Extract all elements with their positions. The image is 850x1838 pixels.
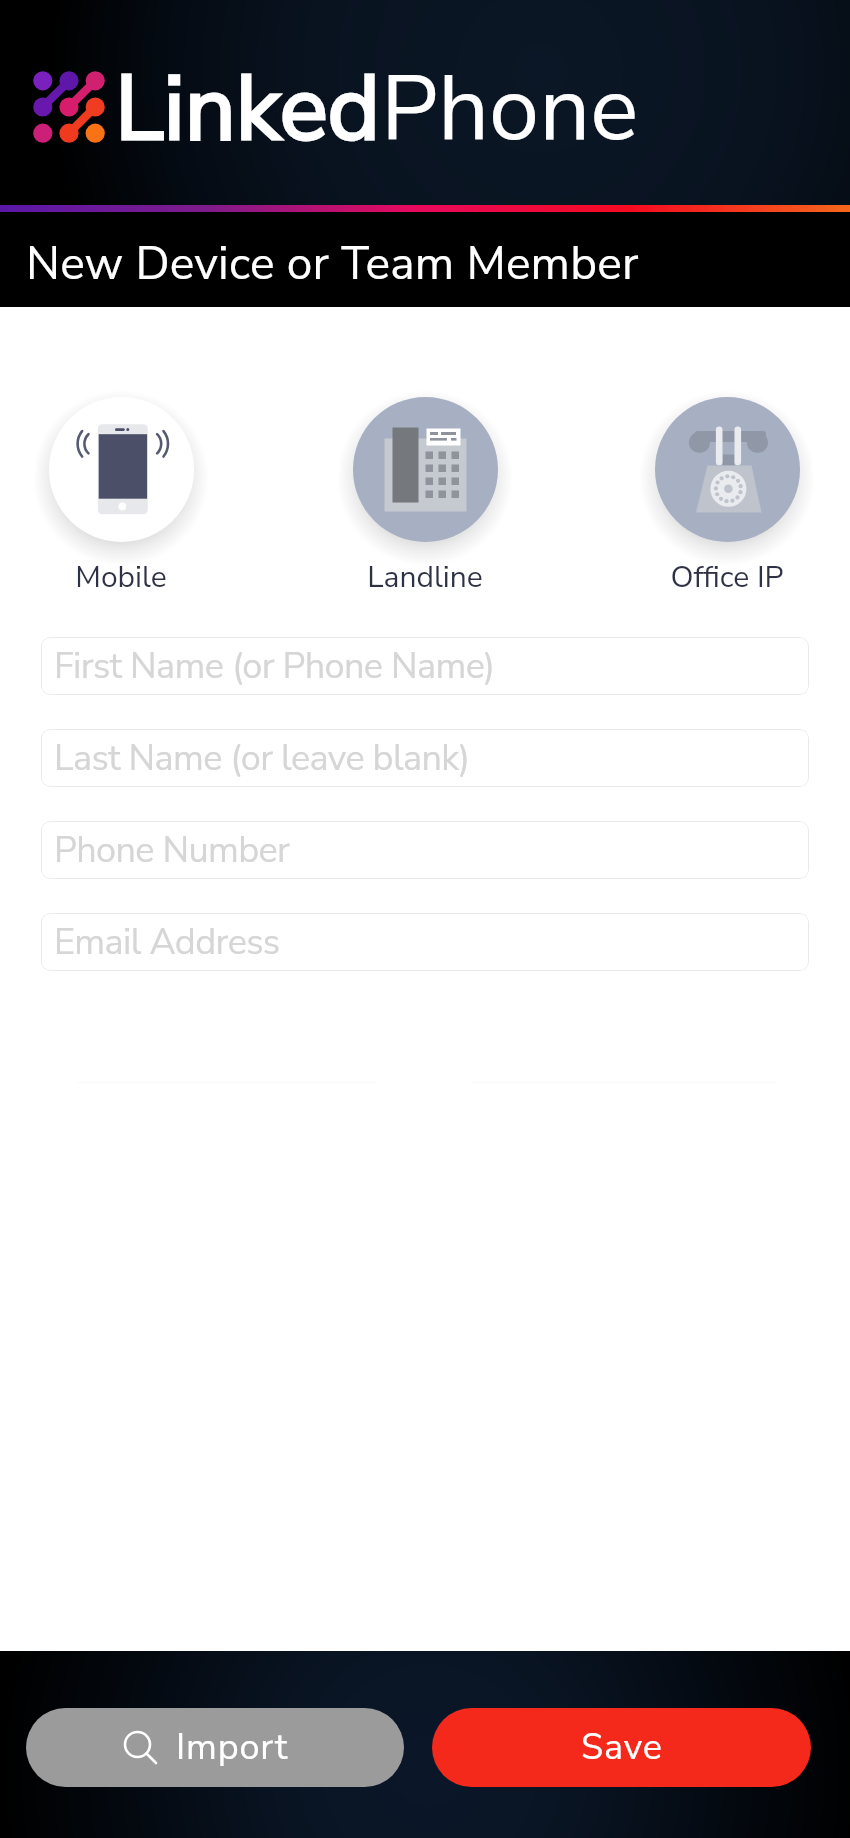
- button[interactable]: Office IP: [627, 381, 827, 587]
- staticText: Phone Number: [54, 826, 290, 875]
- button[interactable]: Last Name (or leave blank): [41, 729, 809, 787]
- staticText: Import: [176, 1723, 289, 1772]
- button[interactable]: Save: [432, 1708, 811, 1787]
- staticText: Mobile: [75, 557, 167, 587]
- staticText: Linked: [115, 48, 381, 171]
- staticText: Phone: [381, 48, 639, 171]
- staticText: First Name (or Phone Name): [54, 642, 495, 691]
- button[interactable]: Email Address: [41, 913, 809, 971]
- button[interactable]: Import: [26, 1708, 404, 1787]
- staticText: New Device or Team Member: [26, 232, 639, 295]
- staticText: Last Name (or leave blank): [54, 734, 470, 783]
- button[interactable]: Landline: [325, 381, 525, 587]
- button[interactable]: Mobile: [21, 381, 221, 587]
- staticText: Landline: [367, 557, 483, 587]
- staticText: Office IP: [670, 557, 784, 587]
- staticText: Email Address: [54, 918, 280, 967]
- button[interactable]: Phone Number: [41, 821, 809, 879]
- staticText: Save: [581, 1723, 663, 1772]
- button[interactable]: First Name (or Phone Name): [41, 637, 809, 695]
